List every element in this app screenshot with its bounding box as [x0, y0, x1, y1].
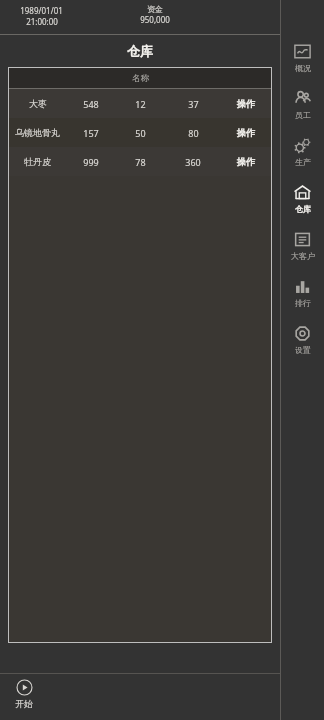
staticText: 概况: [295, 63, 311, 73]
staticText: 乌镜地骨丸: [15, 127, 60, 138]
staticText: 设置: [295, 345, 311, 355]
button[interactable]: 排行: [281, 269, 324, 316]
button[interactable]: 员工: [281, 81, 324, 128]
staticText: 操作: [237, 156, 255, 167]
button[interactable]: 生产: [281, 128, 324, 175]
staticText: 37: [188, 98, 199, 110]
button[interactable]: 操作: [220, 89, 271, 118]
staticText: 操作: [237, 98, 255, 109]
staticText: 21:00:00: [26, 16, 58, 27]
staticText: 78: [135, 156, 146, 168]
staticText: 大客户: [291, 251, 315, 261]
staticText: 生产: [295, 157, 311, 167]
staticText: 仓库: [127, 43, 153, 59]
staticText: 大枣: [29, 98, 47, 109]
staticText: 548: [83, 98, 99, 110]
button[interactable]: 操作: [220, 118, 271, 147]
button[interactable]: 概况: [281, 34, 324, 81]
button[interactable]: 开始: [8, 679, 40, 709]
button[interactable]: 操作: [220, 147, 271, 176]
staticText: 开始: [15, 698, 33, 709]
staticText: 80: [188, 127, 199, 139]
staticText: 1989/01/01: [20, 5, 63, 16]
staticText: 牡丹皮: [24, 156, 51, 167]
staticText: 员工: [295, 110, 311, 120]
staticText: 资金: [147, 4, 163, 14]
staticText: 50: [135, 127, 146, 139]
staticText: 名称: [132, 73, 149, 84]
button[interactable]: 仓库: [281, 175, 324, 222]
staticText: 操作: [237, 127, 255, 138]
staticText: 999: [83, 156, 99, 168]
button[interactable]: 设置: [281, 316, 324, 363]
staticText: 950,000: [140, 14, 170, 25]
staticText: 排行: [295, 298, 311, 308]
button[interactable]: 大客户: [281, 222, 324, 269]
staticText: 仓库: [295, 204, 311, 214]
staticText: 360: [185, 156, 201, 168]
staticText: 157: [83, 127, 99, 139]
staticText: 12: [135, 98, 146, 110]
